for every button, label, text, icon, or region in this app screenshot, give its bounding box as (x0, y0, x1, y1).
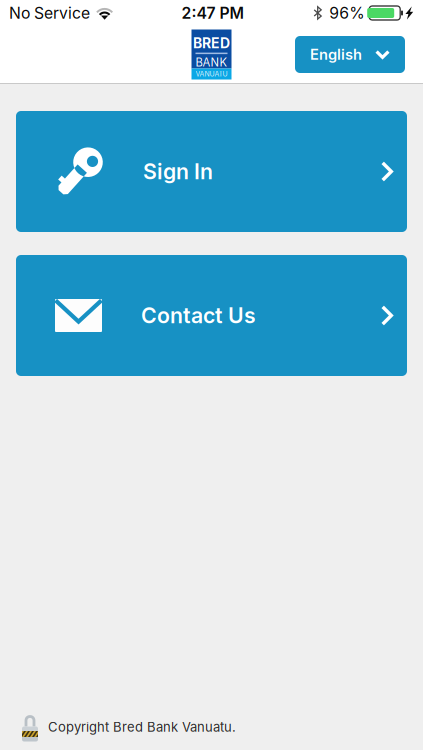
staticText: 96% (329, 3, 364, 22)
button[interactable]: Contact Us (16, 255, 407, 376)
staticText: Contact Us (141, 303, 256, 328)
staticText: BRED (193, 35, 230, 52)
staticText: BANK (195, 56, 227, 69)
staticText: English (310, 46, 362, 63)
staticText: Sign In (143, 159, 213, 184)
staticText: No Service (9, 3, 90, 22)
staticText: VANUATU (195, 70, 227, 78)
button[interactable]: Sign In (16, 111, 407, 232)
button[interactable]: English (295, 36, 405, 73)
staticText: Copyright Bred Bank Vanuatu. (48, 719, 236, 735)
staticText: 2:47 PM (182, 3, 245, 22)
